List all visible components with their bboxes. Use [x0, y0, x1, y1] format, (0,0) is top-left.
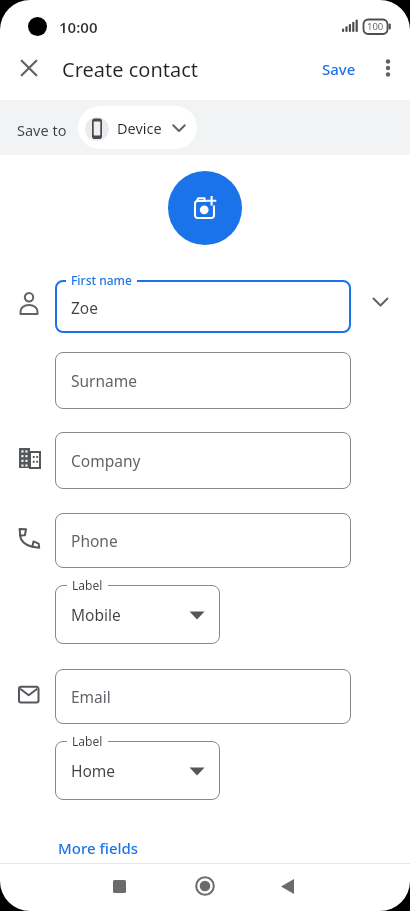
- staticText: Email: [71, 686, 111, 707]
- staticText: Save: [322, 59, 356, 79]
- staticText: Mobile: [71, 604, 121, 625]
- button[interactable]: [168, 171, 242, 245]
- button[interactable]: [189, 870, 221, 902]
- button[interactable]: [55, 513, 351, 568]
- button[interactable]: [13, 52, 45, 84]
- staticText: Home: [71, 760, 116, 781]
- button[interactable]: [271, 870, 303, 902]
- button[interactable]: [55, 432, 351, 489]
- staticText: Label: [72, 577, 103, 593]
- staticText: Zoe: [71, 297, 98, 318]
- staticText: Create contact: [62, 56, 199, 82]
- button[interactable]: [55, 669, 351, 724]
- staticText: Surname: [71, 370, 137, 391]
- staticText: 10:00: [59, 17, 98, 36]
- button[interactable]: [364, 286, 396, 318]
- staticText: More fields: [58, 838, 139, 858]
- staticText: Company: [71, 450, 141, 471]
- button[interactable]: [103, 870, 135, 902]
- staticText: Label: [72, 733, 103, 749]
- button[interactable]: [55, 352, 351, 409]
- staticText: Device: [117, 118, 162, 138]
- staticText: Save to: [17, 120, 67, 140]
- button[interactable]: [55, 585, 220, 644]
- button[interactable]: [55, 741, 220, 800]
- button[interactable]: More fields: [58, 838, 139, 858]
- staticText: First name: [71, 272, 132, 288]
- button[interactable]: [78, 106, 197, 149]
- button[interactable]: [372, 52, 404, 84]
- staticText: 100: [367, 20, 384, 33]
- staticText: Phone: [71, 530, 118, 551]
- button[interactable]: [55, 280, 351, 333]
- button[interactable]: Save: [312, 56, 366, 82]
